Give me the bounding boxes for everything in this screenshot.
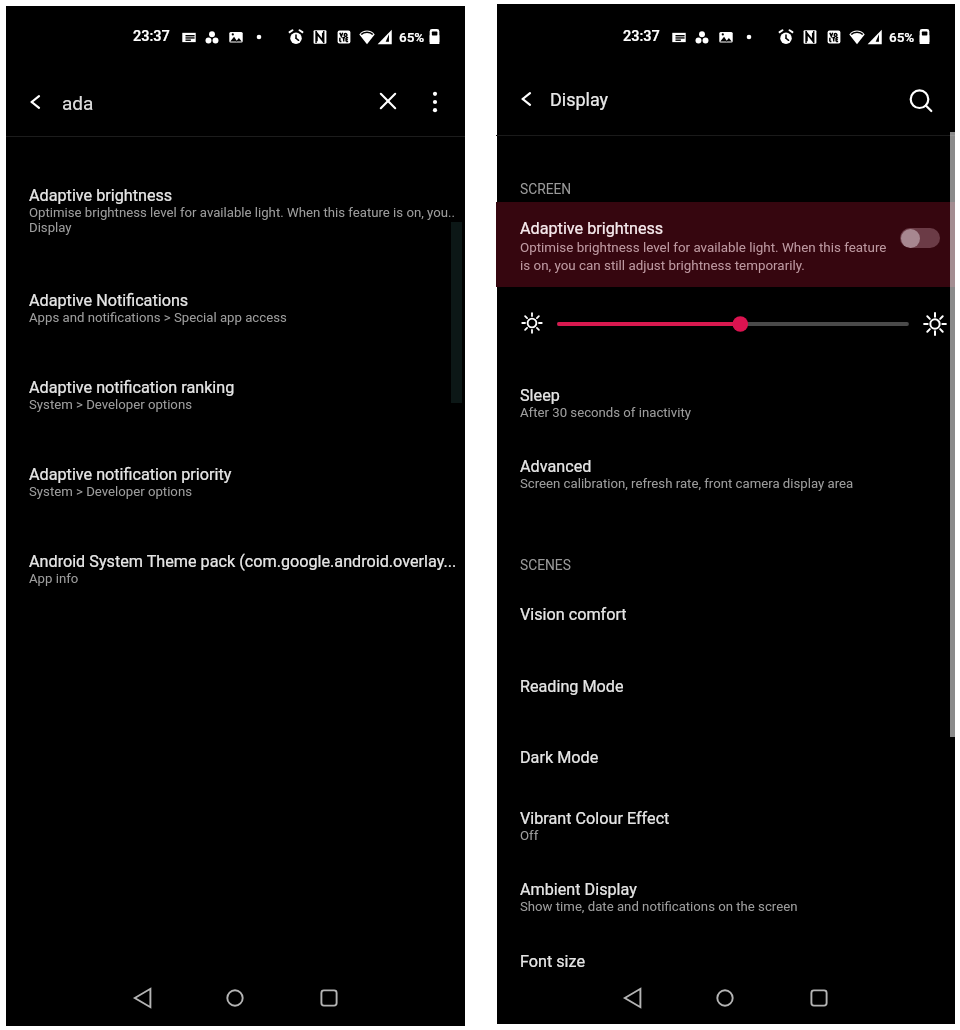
button[interactable]: Back — [21, 88, 49, 116]
button[interactable]: Vision comfort — [496, 605, 955, 624]
button[interactable]: Dark Mode — [496, 748, 955, 767]
staticText: App info — [29, 571, 79, 586]
button[interactable]: Adaptive Notifications — [6, 291, 465, 325]
button[interactable]: Recents — [801, 980, 837, 1016]
button[interactable]: Sleep — [496, 386, 955, 420]
staticText: 23:37 — [133, 28, 170, 45]
staticText: Adaptive notification priority — [29, 465, 232, 484]
staticText: SCENES — [520, 557, 571, 573]
staticText: 23:37 — [623, 28, 660, 45]
staticText: Show time, date and notifications on the… — [520, 899, 798, 914]
button[interactable]: Adaptive brightness toggle — [900, 228, 940, 248]
button[interactable]: Search — [904, 84, 936, 116]
button[interactable]: Adaptive notification priority — [6, 465, 465, 499]
staticText: Vibrant Colour Effect — [520, 809, 670, 828]
button[interactable]: Adaptive brightness — [6, 186, 465, 235]
staticText: 65% — [889, 29, 915, 45]
staticText: After 30 seconds of inactivity — [520, 405, 691, 420]
staticText: Advanced — [520, 457, 592, 476]
button[interactable]: Ambient Display — [496, 880, 955, 914]
staticText: System > Developer options — [29, 484, 192, 499]
button[interactable]: Recents — [311, 980, 347, 1016]
staticText: SCREEN — [520, 181, 572, 197]
button[interactable]: Font size — [496, 952, 955, 971]
staticText: Optimise brightness level for available … — [29, 205, 455, 220]
staticText: Ambient Display — [520, 880, 637, 899]
staticText: Screen calibration, refresh rate, front … — [520, 476, 854, 491]
button[interactable]: Back — [512, 85, 540, 113]
staticText: Adaptive Notifications — [29, 291, 189, 310]
button[interactable]: Back — [125, 980, 161, 1016]
button[interactable]: Adaptive brightness — [496, 202, 955, 287]
staticText: Dark Mode — [520, 748, 599, 767]
button[interactable]: Reading Mode — [496, 677, 955, 696]
staticText: Adaptive brightness — [520, 219, 664, 238]
button[interactable]: Clear search — [372, 85, 404, 117]
staticText: Optimise brightness level for available … — [520, 240, 887, 273]
staticText: Apps and notifications > Special app acc… — [29, 310, 287, 325]
staticText: Reading Mode — [520, 677, 624, 696]
staticText: Display — [550, 89, 609, 110]
button[interactable]: Back — [6, 80, 465, 133]
staticText: Adaptive notification ranking — [29, 378, 235, 397]
staticText: ada — [62, 92, 94, 114]
staticText: Font size — [520, 952, 586, 971]
staticText: Adaptive brightness — [29, 186, 173, 205]
button[interactable]: Adaptive notification ranking — [6, 378, 465, 412]
staticText: Off — [520, 828, 539, 843]
button[interactable]: More options — [419, 86, 451, 118]
button[interactable]: Back — [615, 980, 651, 1016]
button[interactable]: Home — [217, 980, 253, 1016]
staticText: Sleep — [520, 386, 560, 405]
staticText: 65% — [399, 29, 425, 45]
staticText: System > Developer options — [29, 397, 192, 412]
staticText: Display — [29, 220, 72, 235]
button[interactable]: Home — [707, 980, 743, 1016]
button[interactable]: Android System Theme pack (com.google.an… — [6, 552, 465, 586]
button[interactable]: Vibrant Colour Effect — [496, 809, 955, 843]
button[interactable]: Advanced — [496, 457, 955, 491]
staticText: Vision comfort — [520, 605, 627, 624]
staticText: Android System Theme pack (com.google.an… — [29, 552, 457, 571]
